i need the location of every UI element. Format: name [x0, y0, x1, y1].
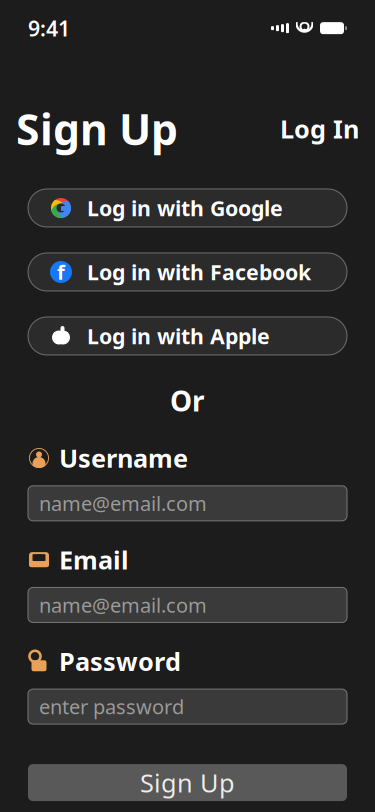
staticText: Log in with Google: [87, 194, 283, 222]
button[interactable]: Log In: [280, 112, 359, 145]
staticText: enter password: [39, 693, 184, 720]
staticText: Log in with Apple: [87, 322, 270, 350]
staticText: Or: [170, 382, 205, 419]
button[interactable]: Log in with Google: [28, 189, 347, 227]
button[interactable]: Log in with Apple: [28, 317, 347, 355]
staticText: Username: [59, 441, 188, 475]
staticText: 9:41: [28, 14, 70, 42]
button[interactable]: Sign Up: [28, 764, 347, 801]
staticText: Password: [59, 644, 181, 678]
staticText: Sign Up: [16, 100, 178, 157]
staticText: name@email.com: [39, 490, 207, 517]
staticText: f: [57, 259, 65, 285]
button[interactable]: enter password: [28, 689, 347, 724]
button[interactable]: name@email.com: [28, 587, 347, 622]
button[interactable]: f: [28, 253, 347, 291]
staticText: Sign Up: [140, 766, 235, 799]
staticText: Email: [59, 543, 129, 576]
staticText: name@email.com: [39, 592, 207, 618]
staticText: Log In: [280, 112, 359, 145]
button[interactable]: name@email.com: [28, 486, 347, 521]
staticText: Log in with Facebook: [87, 258, 311, 286]
